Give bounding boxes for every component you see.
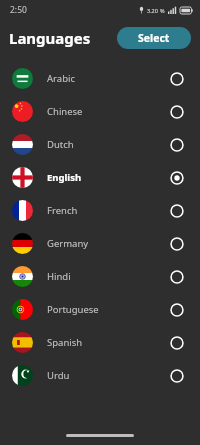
other: Select Portuguese [168, 301, 186, 319]
button[interactable]: Arabic [0, 62, 200, 95]
button[interactable]: Hindi [0, 260, 200, 293]
button[interactable]: Dutch [0, 128, 200, 161]
other: Select Germany [168, 235, 186, 253]
other: Select Chinese [168, 103, 186, 121]
other: Select Spanish [168, 334, 186, 352]
staticText: Arabic [47, 72, 75, 85]
button[interactable]: French [0, 194, 200, 227]
staticText: 2:50 [10, 4, 27, 16]
staticText: % [160, 7, 165, 14]
staticText: Hindi [47, 270, 71, 283]
staticText: Spanish [47, 336, 83, 349]
button[interactable]: Germany [0, 227, 200, 260]
staticText: Languages [9, 28, 91, 48]
button[interactable]: Select [117, 27, 191, 49]
button[interactable]: Spanish [0, 326, 200, 359]
other: Select Urdu [168, 367, 186, 385]
staticText: Portuguese [47, 303, 99, 316]
other: Select Dutch [168, 136, 186, 154]
other: Select Arabic [168, 70, 186, 88]
staticText: 3.20 [147, 7, 158, 14]
other: Select French [168, 202, 186, 220]
button[interactable]: Portuguese [0, 293, 200, 326]
staticText: Select [138, 31, 170, 45]
button[interactable]: Urdu [0, 359, 200, 392]
button[interactable]: English [0, 161, 200, 194]
staticText: Dutch [47, 138, 74, 151]
staticText: Germany [47, 237, 89, 250]
other: Select Hindi [168, 268, 186, 286]
staticText: Chinese [47, 105, 83, 118]
other: Select English [168, 169, 186, 187]
staticText: Urdu [47, 369, 70, 382]
staticText: French [47, 204, 78, 217]
staticText: English [47, 171, 82, 184]
button[interactable]: Chinese [0, 95, 200, 128]
